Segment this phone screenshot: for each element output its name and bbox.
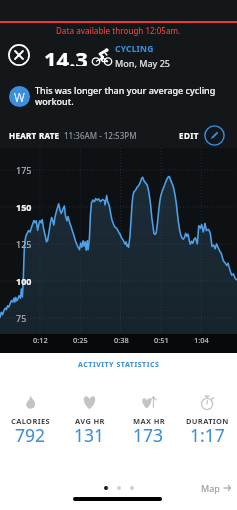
staticText: 1:17	[190, 423, 225, 447]
staticText: Mon, May 25	[115, 57, 170, 69]
staticText: This was longer than your average cyclin…	[35, 84, 231, 108]
staticText: 173	[133, 423, 164, 447]
button[interactable]: CALORIES	[0, 395, 60, 450]
button[interactable]: DURATION	[178, 395, 237, 450]
button[interactable]: MAX HR	[119, 395, 178, 450]
staticText: 75	[16, 312, 27, 324]
staticText: 0:25	[73, 335, 88, 345]
staticText: CALORIES	[11, 416, 50, 426]
staticText: 0:51	[154, 335, 169, 345]
staticText: 14.3	[44, 44, 88, 66]
staticText: 131	[74, 423, 105, 447]
staticText: EDIT	[179, 130, 199, 141]
staticText: 100	[16, 275, 32, 287]
staticText: 175	[16, 164, 32, 176]
staticText: DURATION	[186, 416, 229, 426]
staticText: W	[14, 89, 25, 105]
staticText: HEART RATE	[9, 130, 60, 141]
button[interactable]: AVG HR	[60, 395, 119, 450]
staticText: ACTIVITY STATISTICS	[78, 360, 160, 370]
staticText: 125	[16, 238, 32, 250]
staticText: 0:38	[114, 335, 129, 345]
staticText: 792	[15, 423, 46, 447]
staticText: 150	[16, 201, 32, 213]
staticText: MAX HR	[133, 416, 165, 426]
staticText: 0:12	[33, 335, 48, 345]
button[interactable]: Map	[201, 480, 231, 496]
button[interactable]: Close	[8, 44, 30, 66]
staticText: Data available through 12:05am.	[56, 25, 181, 36]
staticText: Map	[201, 482, 220, 494]
staticText: CYCLING	[115, 43, 154, 55]
staticText: 11:36AM - 12:53PM	[64, 130, 137, 141]
button[interactable]: EDIT	[179, 124, 225, 146]
staticText: AVG HR	[75, 416, 105, 426]
staticText: 1:04	[194, 335, 209, 345]
